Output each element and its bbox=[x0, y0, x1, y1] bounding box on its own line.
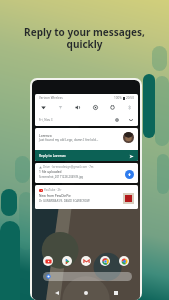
staticText: Fri, Nov 3 bbox=[39, 118, 53, 122]
button[interactable]: App bbox=[43, 256, 53, 266]
button[interactable]: App bbox=[119, 256, 129, 266]
button[interactable]: App bbox=[81, 256, 91, 266]
button[interactable]: Back bbox=[52, 288, 62, 298]
button[interactable]: Quick setting bbox=[40, 104, 47, 111]
staticText: Reply to Lorenzo bbox=[39, 153, 66, 158]
button[interactable]: Quick setting bbox=[57, 104, 64, 111]
button[interactable]: App bbox=[62, 256, 72, 266]
staticText: YouTube · 2h · bbox=[44, 188, 63, 192]
staticText: Reply to your messages, quickly bbox=[0, 25, 169, 51]
button[interactable]: Lorenzo bbox=[35, 128, 138, 161]
button[interactable]: Quick setting bbox=[109, 104, 116, 111]
button[interactable]: Reply to Lorenzo bbox=[35, 150, 138, 161]
button[interactable]: Recents bbox=[111, 288, 121, 298]
button[interactable]: App bbox=[100, 256, 110, 266]
staticText: New from PewDiePie bbox=[39, 194, 71, 198]
other: Send bbox=[128, 153, 134, 159]
button[interactable]: YouTube · 2h · bbox=[35, 185, 138, 209]
staticText: Verizon Wireless bbox=[39, 96, 63, 100]
staticText: 1 file uploaded bbox=[39, 170, 62, 174]
staticText: Lorenzo bbox=[39, 133, 52, 137]
staticText: Screenshot_20171228-204939.jpg bbox=[39, 175, 84, 179]
staticText: Just found my old Lego, damn I feel old.… bbox=[39, 138, 99, 142]
button[interactable]: Drive · lorenzodesign@gmail.com · 7m bbox=[35, 163, 138, 183]
staticText: Drive · lorenzodesign@gmail.com · 7m bbox=[43, 165, 94, 169]
staticText: 20:50 bbox=[126, 96, 134, 100]
button[interactable] bbox=[43, 272, 132, 281]
button[interactable]: Quick setting bbox=[74, 104, 81, 111]
button[interactable]: Settings bbox=[113, 116, 120, 123]
button[interactable]: Collapse bbox=[127, 116, 134, 123]
button[interactable]: Quick setting bbox=[92, 104, 99, 111]
staticText: Dr GUMMIBAR VS. DAVID SCARECROW bbox=[39, 199, 90, 203]
button[interactable]: Quick setting bbox=[126, 104, 133, 111]
button[interactable]: Home bbox=[81, 288, 91, 298]
staticText: 100% bbox=[114, 96, 122, 100]
